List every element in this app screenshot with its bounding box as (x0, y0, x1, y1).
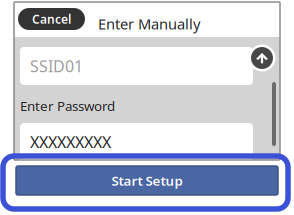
button[interactable]: Start Setup (16, 166, 278, 195)
staticText: Start Setup (111, 172, 182, 189)
staticText: Enter Manually (98, 14, 200, 33)
staticText: XXXXXXXXX (30, 131, 111, 153)
button[interactable]: Scroll to top (248, 44, 276, 72)
button[interactable]: Cancel (18, 8, 85, 30)
staticText: Cancel (32, 11, 71, 27)
staticText: SSID01 (30, 55, 83, 77)
staticText: Enter Password (20, 97, 115, 115)
